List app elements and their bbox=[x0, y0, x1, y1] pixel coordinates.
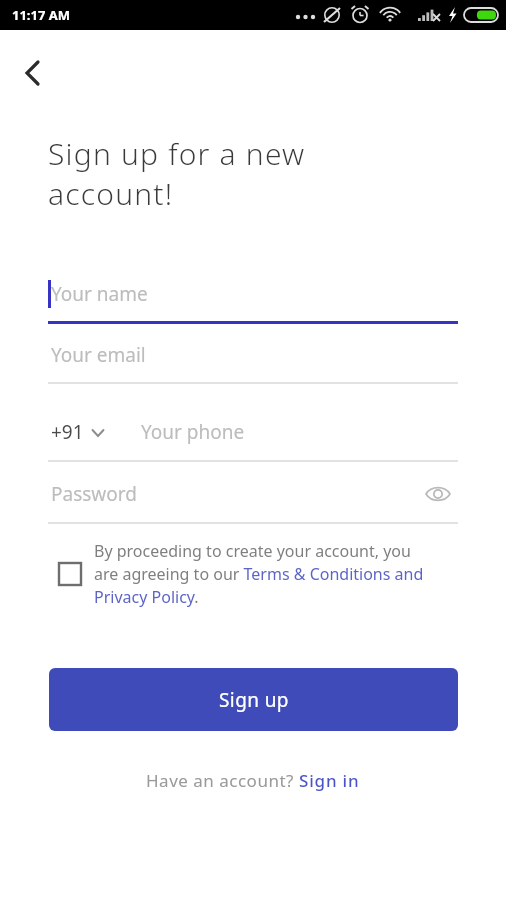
button[interactable]: Show password bbox=[418, 474, 458, 514]
button[interactable]: +91 bbox=[48, 419, 111, 445]
button[interactable]: Accept terms bbox=[48, 552, 92, 596]
button[interactable]: Your name bbox=[48, 272, 458, 324]
staticText: Sign up for a new account! bbox=[48, 133, 468, 214]
button[interactable]: Sign up bbox=[49, 668, 458, 731]
staticText: Your email bbox=[51, 342, 146, 368]
staticText: Your name bbox=[51, 281, 148, 307]
button[interactable]: Your email bbox=[48, 334, 458, 384]
button[interactable]: Password bbox=[48, 472, 458, 524]
staticText: Have an account? bbox=[146, 769, 299, 792]
button[interactable]: By proceeding to create your account, yo… bbox=[94, 540, 424, 608]
staticText: Your phone bbox=[141, 419, 245, 445]
staticText: Password bbox=[51, 481, 137, 507]
staticText: 11:17 AM bbox=[12, 6, 71, 24]
staticText: +91 bbox=[51, 419, 84, 445]
staticText: Sign up bbox=[219, 687, 289, 713]
button[interactable]: Back bbox=[8, 50, 54, 96]
staticText: Sign in bbox=[299, 769, 360, 792]
button[interactable]: Have an account? bbox=[146, 769, 360, 792]
